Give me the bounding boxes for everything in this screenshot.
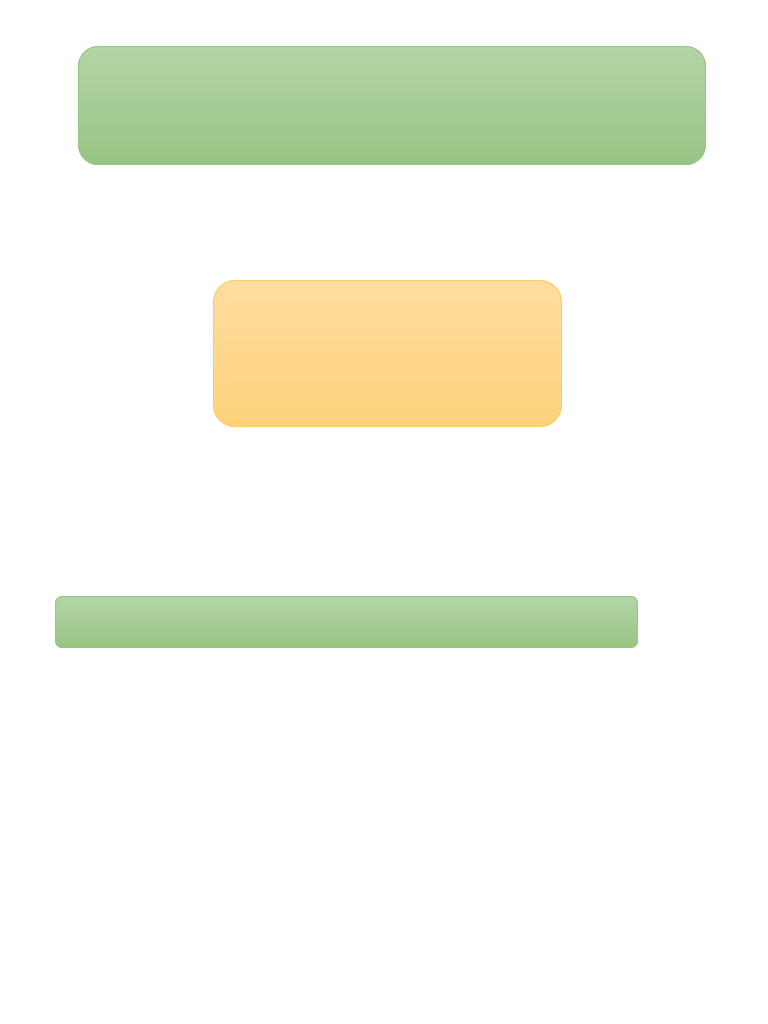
button[interactable]: Highlight block — [213, 280, 562, 427]
button[interactable]: Secondary block — [55, 596, 638, 648]
button[interactable]: Primary block — [78, 46, 706, 165]
